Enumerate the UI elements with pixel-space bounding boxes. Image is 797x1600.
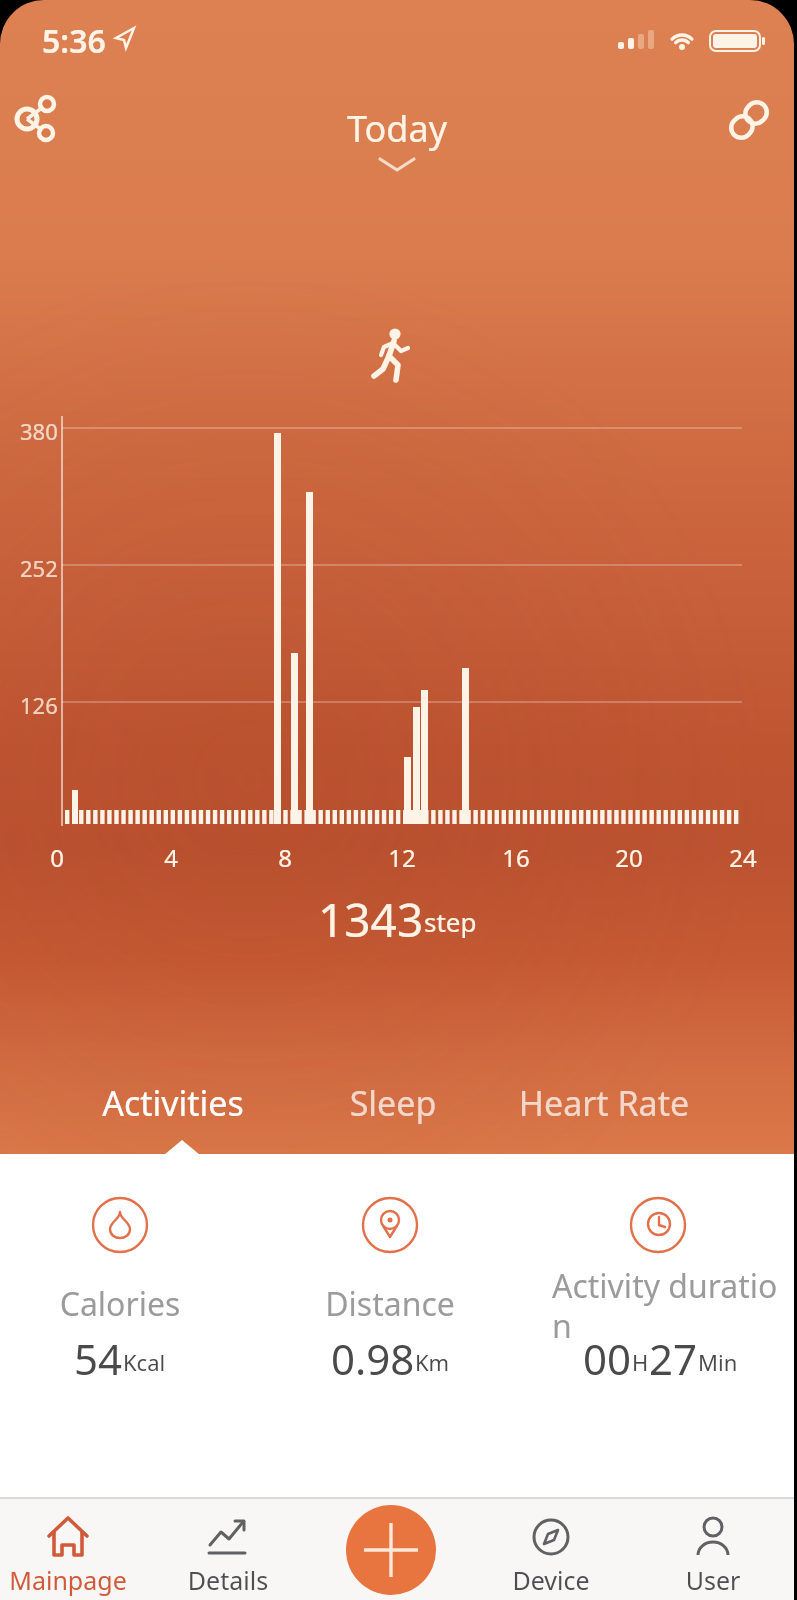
staticText: User [645,1563,781,1597]
staticText: Device [483,1563,619,1597]
button[interactable]: Sleep [313,1080,473,1126]
staticText: 4 [141,841,201,874]
staticText: 0 [27,841,87,874]
staticText: 12 [372,841,432,874]
button[interactable]: Activities [93,1080,253,1126]
staticText: Km [415,1347,450,1377]
staticText: 126 [20,690,60,720]
staticText: Calories [10,1282,230,1326]
staticText: 27 [649,1330,698,1382]
staticText: Details [160,1563,296,1597]
staticText: 8 [255,841,315,874]
staticText: 16 [486,841,546,874]
button[interactable] [346,1505,436,1595]
staticText: Heart Rate [504,1080,704,1126]
staticText: Activities [93,1080,253,1126]
staticText: Min [698,1347,738,1377]
staticText: 24 [713,841,773,874]
button[interactable]: Device [483,1505,619,1597]
staticText: 380 [20,416,60,446]
staticText: n [552,1304,612,1348]
staticText: Today [320,104,474,153]
staticText: Distance [280,1282,500,1326]
button[interactable]: User [645,1505,781,1597]
button[interactable]: Mainpage [0,1505,136,1597]
staticText: 5:36 [42,19,152,63]
staticText: 252 [20,553,60,583]
staticText: 0.98 [331,1330,415,1382]
staticText: Activity duratio [552,1264,792,1308]
staticText: 54 [74,1330,123,1382]
staticText: 20 [599,841,659,874]
button[interactable] [718,90,778,150]
staticText: Kcal [123,1347,166,1377]
staticText: step [424,904,477,939]
staticText: Mainpage [0,1563,136,1597]
button[interactable]: Details [160,1505,296,1597]
staticText: H [632,1347,649,1377]
button[interactable]: Today [320,104,474,178]
staticText: 00 [583,1330,632,1382]
staticText: 1343 [318,888,424,944]
button[interactable]: Heart Rate [504,1080,704,1126]
staticText: Sleep [313,1080,473,1126]
button[interactable] [6,90,66,150]
